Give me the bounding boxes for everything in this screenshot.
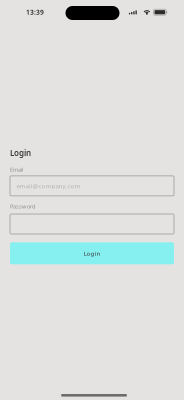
staticText: Login (10, 147, 31, 158)
staticText: 13:39 (26, 8, 44, 17)
button[interactable]: Password field (10, 214, 174, 234)
staticText: Login (83, 249, 100, 257)
staticText: Email (10, 165, 23, 173)
staticText: email@company.com (17, 182, 81, 190)
button[interactable]: Email field (10, 176, 174, 196)
staticText: Password (10, 202, 36, 210)
button[interactable]: Login (10, 242, 174, 264)
